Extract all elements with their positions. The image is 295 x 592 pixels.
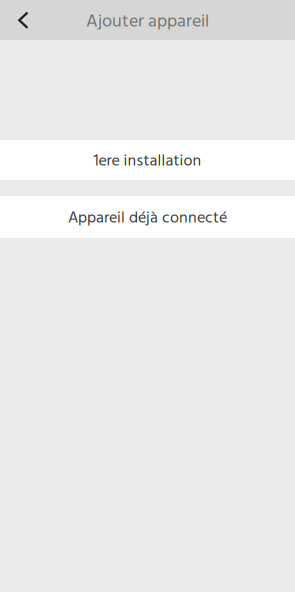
- button[interactable]: Appareil déjà connecté: [0, 196, 295, 238]
- staticText: Ajouter appareil: [86, 8, 209, 36]
- staticText: Appareil déjà connecté: [68, 206, 227, 231]
- staticText: 1ere installation: [93, 149, 201, 174]
- button[interactable]: Back: [0, 0, 44, 40]
- button[interactable]: 1ere installation: [0, 140, 295, 180]
